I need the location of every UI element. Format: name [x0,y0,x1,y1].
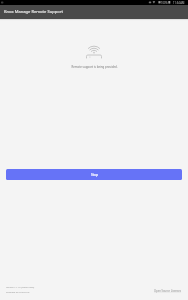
staticText: Stop [91,173,98,177]
staticText: 100% [161,1,168,5]
staticText: Knox Manage Remote Support [4,9,63,15]
staticText: Version 1.1.10 (MDM21308) [6,286,35,289]
staticText: Remote support is being provided. [71,65,118,69]
button[interactable]: Stop [6,169,182,180]
staticText: 11:34 AM [173,1,185,5]
button[interactable]: Open Source Licenses [154,289,182,293]
staticText: Provided by SAMSUNG [6,291,30,294]
